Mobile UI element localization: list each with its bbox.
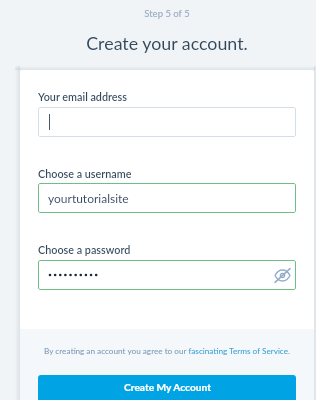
staticText: Choose a password xyxy=(38,243,131,256)
button[interactable] xyxy=(38,107,296,137)
staticText: Step 5 of 5 xyxy=(20,8,314,19)
staticText: Create your account. xyxy=(20,32,314,53)
button[interactable]: Hide password xyxy=(271,264,293,286)
button[interactable]: Create My Account xyxy=(38,375,296,400)
staticText: Your email address xyxy=(38,90,127,103)
button[interactable]: yourtutorialsite xyxy=(38,183,296,213)
button[interactable]: Hide password xyxy=(38,260,296,290)
staticText: yourtutorialsite xyxy=(48,191,129,205)
staticText: Choose a username xyxy=(38,167,132,180)
staticText: Create My Account xyxy=(124,381,211,393)
staticText: By creating an account you agree to our … xyxy=(38,346,296,356)
